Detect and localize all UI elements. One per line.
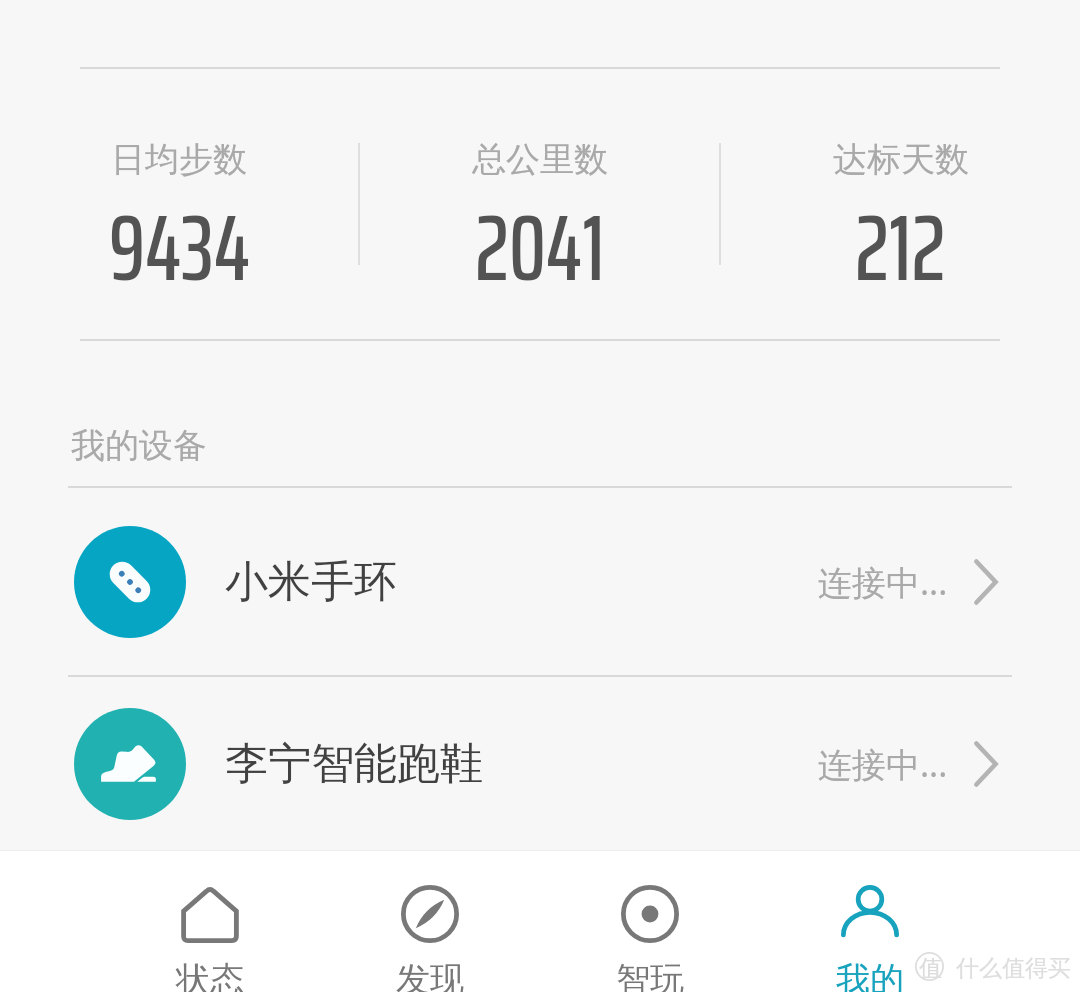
- staticText: 我的: [836, 958, 904, 992]
- staticText: 连接中...: [818, 741, 948, 787]
- other: 我的: [841, 885, 899, 943]
- staticText: 小米手环: [225, 555, 397, 609]
- staticText: 李宁智能跑鞋: [225, 737, 483, 791]
- staticText: 状态: [176, 958, 244, 992]
- staticText: 发现: [396, 958, 464, 992]
- button[interactable]: 发现: [320, 851, 540, 992]
- button[interactable]: 状态: [100, 851, 320, 992]
- staticText: 连接中...: [818, 559, 948, 605]
- staticText: 我的设备: [71, 424, 207, 467]
- staticText: 智玩: [616, 958, 684, 992]
- staticText: 达标天数: [833, 138, 969, 181]
- staticText: 日均步数: [111, 138, 247, 181]
- button[interactable]: 我的: [760, 851, 980, 992]
- staticText: 2041: [475, 174, 605, 320]
- other: 状态: [181, 885, 239, 943]
- button[interactable]: 小米手环: [0, 488, 1080, 675]
- staticText: 9434: [109, 174, 250, 320]
- staticText: 值: [919, 954, 942, 983]
- other: 智玩: [621, 885, 679, 943]
- button[interactable]: 李宁智能跑鞋: [0, 677, 1080, 850]
- staticText: 什么值得买: [956, 954, 1071, 983]
- other: 发现: [401, 885, 459, 943]
- staticText: 总公里数: [472, 138, 608, 181]
- staticText: 212: [855, 174, 946, 320]
- button[interactable]: 智玩: [540, 851, 760, 992]
